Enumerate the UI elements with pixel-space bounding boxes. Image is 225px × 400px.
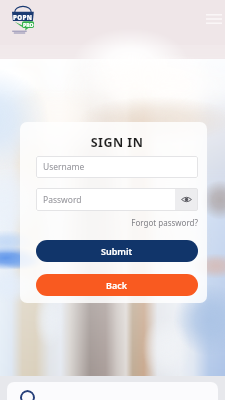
staticText: Username bbox=[43, 161, 85, 173]
button[interactable]: Forgot password? bbox=[36, 217, 198, 228]
staticText: SIGN IN bbox=[36, 134, 198, 151]
button[interactable]: Back bbox=[36, 274, 198, 296]
staticText: POPN bbox=[13, 13, 33, 21]
button[interactable]: Show password bbox=[175, 188, 198, 211]
button[interactable]: Submit bbox=[36, 240, 198, 262]
button[interactable]: Username bbox=[36, 156, 198, 178]
button[interactable]: Menu bbox=[206, 14, 222, 26]
staticText: PRO bbox=[23, 22, 34, 29]
staticText: Submit bbox=[101, 245, 133, 257]
staticText: Password bbox=[43, 194, 175, 206]
staticText: Back bbox=[106, 279, 128, 291]
